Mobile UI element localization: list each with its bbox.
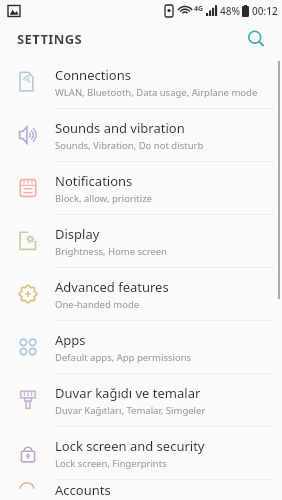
staticText: Display <box>55 225 100 243</box>
staticText: Brightness, Home screen <box>55 245 167 258</box>
staticText: Sounds and vibration <box>55 119 185 137</box>
staticText: Default apps, App permissions <box>55 351 192 364</box>
staticText: Apps <box>55 331 86 349</box>
staticText: Sounds, Vibration, Do not disturb <box>55 139 204 152</box>
staticText: Connections <box>55 66 131 84</box>
staticText: Lock screen and security <box>55 437 205 455</box>
button[interactable]: Accounts <box>0 480 282 500</box>
staticText: 48% <box>220 4 240 18</box>
button[interactable]: Sounds and vibration <box>0 109 282 162</box>
staticText: WLAN, Bluetooth, Data usage, Airplane mo… <box>55 86 258 99</box>
button[interactable]: Search <box>240 23 272 55</box>
staticText: Accounts <box>55 481 111 499</box>
button[interactable]: Advanced features <box>0 268 282 321</box>
button[interactable]: Duvar kağıdı ve temalar <box>0 374 282 427</box>
staticText: Notifications <box>55 172 133 190</box>
staticText: 4G <box>194 4 204 14</box>
staticText: Duvar Kağıtları, Temalar, Simgeler <box>55 404 206 417</box>
staticText: One-handed mode <box>55 298 140 311</box>
button[interactable]: Lock screen and security <box>0 427 282 480</box>
staticText: Block, allow, prioritize <box>55 192 152 205</box>
button[interactable]: Notifications <box>0 162 282 215</box>
button[interactable]: Connections <box>0 56 282 109</box>
staticText: 00:12 <box>252 4 278 18</box>
staticText: Duvar kağıdı ve temalar <box>55 384 201 402</box>
button[interactable]: Display <box>0 215 282 268</box>
staticText: Lock screen, Fingerprints <box>55 457 167 470</box>
button[interactable]: Apps <box>0 321 282 374</box>
staticText: SETTINGS <box>17 30 83 48</box>
staticText: Advanced features <box>55 278 169 296</box>
